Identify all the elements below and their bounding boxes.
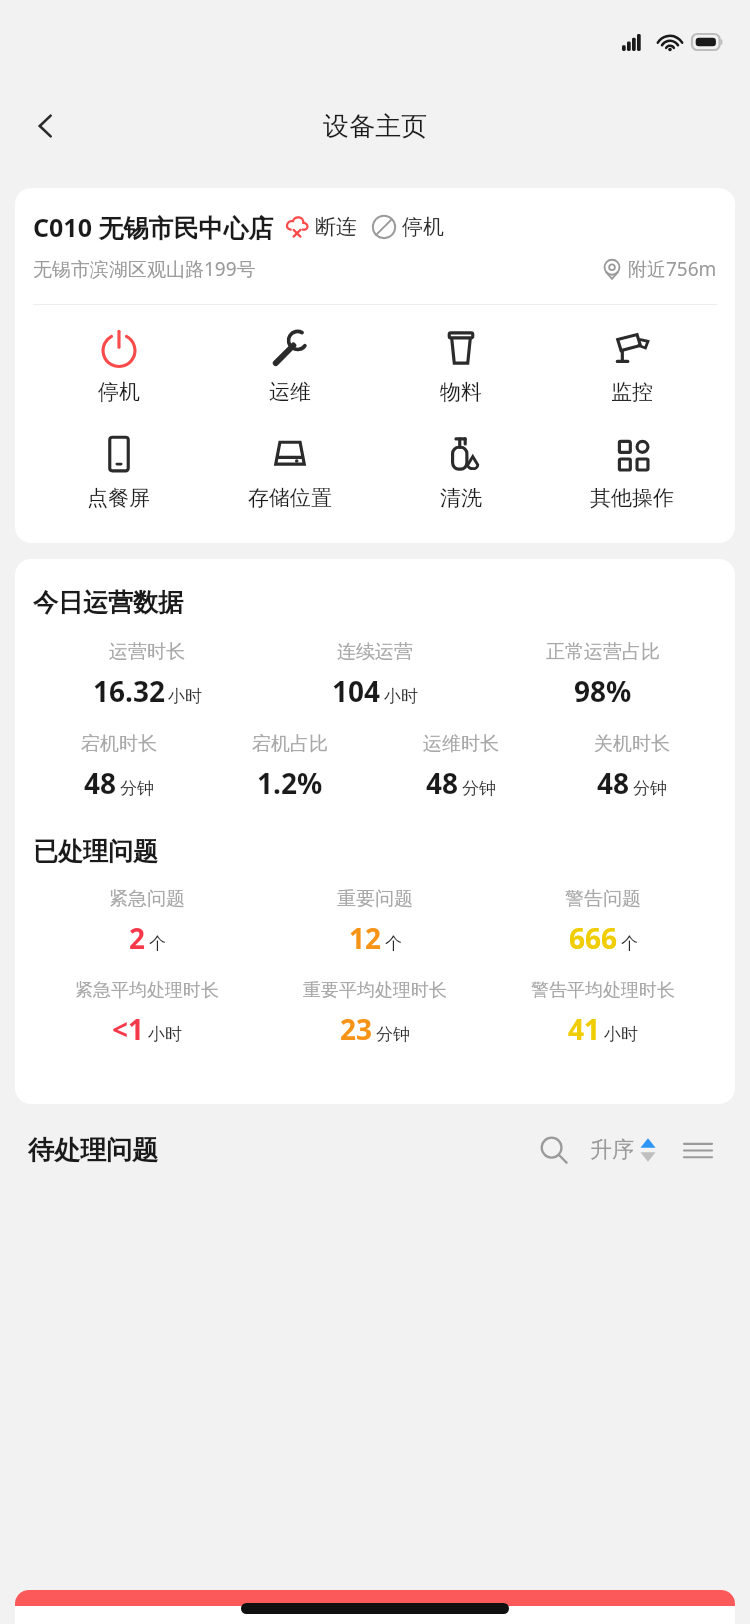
- button[interactable]: 物料: [375, 323, 546, 409]
- staticText: 小时: [148, 1024, 182, 1045]
- button[interactable]: 监控: [546, 323, 717, 409]
- staticText: C010 无锡市民中心店: [33, 210, 274, 244]
- button[interactable]: 其他操作: [546, 429, 717, 515]
- staticText: 分钟: [376, 1024, 410, 1045]
- staticText: 48: [426, 764, 459, 802]
- button[interactable]: Search: [530, 1126, 578, 1174]
- staticText: 宕机占比: [252, 732, 328, 756]
- staticText: 104: [332, 672, 381, 710]
- staticText: 停机: [402, 214, 444, 240]
- staticText: 重要问题: [337, 887, 413, 911]
- staticText: 已处理问题: [33, 836, 158, 867]
- other: Stopped: [371, 214, 397, 240]
- staticText: 小时: [604, 1024, 638, 1045]
- staticText: 设备主页: [323, 110, 427, 143]
- staticText: 23: [340, 1010, 373, 1048]
- staticText: 运维时长: [423, 732, 499, 756]
- staticText: <1: [112, 1010, 145, 1048]
- staticText: 41: [568, 1010, 601, 1048]
- button[interactable]: C010 无锡市民中心店: [15, 188, 735, 543]
- staticText: 2: [129, 919, 146, 957]
- staticText: 今日运营数据: [33, 587, 183, 618]
- staticText: 分钟: [120, 778, 154, 799]
- button[interactable]: 停机: [33, 323, 204, 409]
- staticText: 个: [149, 933, 166, 954]
- button[interactable]: Filter: [674, 1126, 722, 1174]
- staticText: 重要平均处理时长: [303, 979, 447, 1002]
- other: Disconnected: [284, 214, 310, 240]
- staticText: 48: [597, 764, 630, 802]
- staticText: 正常运营占比: [546, 640, 660, 664]
- button[interactable]: 清洗: [375, 429, 546, 515]
- staticText: 待处理问题: [28, 1134, 158, 1167]
- staticText: 监控: [611, 379, 653, 405]
- staticText: 物料: [440, 379, 482, 405]
- staticText: 运营时长: [109, 640, 185, 664]
- staticText: 点餐屏: [87, 485, 150, 511]
- staticText: 16.32: [93, 672, 165, 710]
- staticText: 666: [569, 919, 618, 957]
- staticText: 存储位置: [248, 485, 332, 511]
- button[interactable]: 升序: [586, 1128, 660, 1172]
- button[interactable]: Back: [18, 98, 74, 154]
- staticText: 断连: [315, 214, 357, 240]
- staticText: 个: [621, 933, 638, 954]
- staticText: 分钟: [462, 778, 496, 799]
- button[interactable]: 点餐屏: [33, 429, 204, 515]
- staticText: 附近756m: [628, 256, 717, 282]
- staticText: 紧急平均处理时长: [75, 979, 219, 1002]
- staticText: 48: [84, 764, 117, 802]
- staticText: 清洗: [440, 485, 482, 511]
- staticText: 关机时长: [594, 732, 670, 756]
- staticText: 紧急问题: [109, 887, 185, 911]
- staticText: 个: [385, 933, 402, 954]
- staticText: 小时: [384, 686, 418, 707]
- staticText: 1.2%: [257, 764, 323, 802]
- staticText: 98%: [574, 672, 632, 710]
- staticText: 12: [349, 919, 382, 957]
- staticText: 无锡市滨湖区观山路199号: [33, 256, 256, 282]
- staticText: 警告平均处理时长: [531, 979, 675, 1002]
- button[interactable]: 存储位置: [204, 429, 375, 515]
- button[interactable]: 运维: [204, 323, 375, 409]
- staticText: 宕机时长: [81, 732, 157, 756]
- staticText: 分钟: [633, 778, 667, 799]
- staticText: 运维: [269, 379, 311, 405]
- staticText: 停机: [98, 379, 140, 405]
- staticText: 小时: [168, 686, 202, 707]
- staticText: 其他操作: [590, 485, 674, 511]
- staticText: 警告问题: [565, 887, 641, 911]
- staticText: 连续运营: [337, 640, 413, 664]
- staticText: 升序: [590, 1136, 634, 1164]
